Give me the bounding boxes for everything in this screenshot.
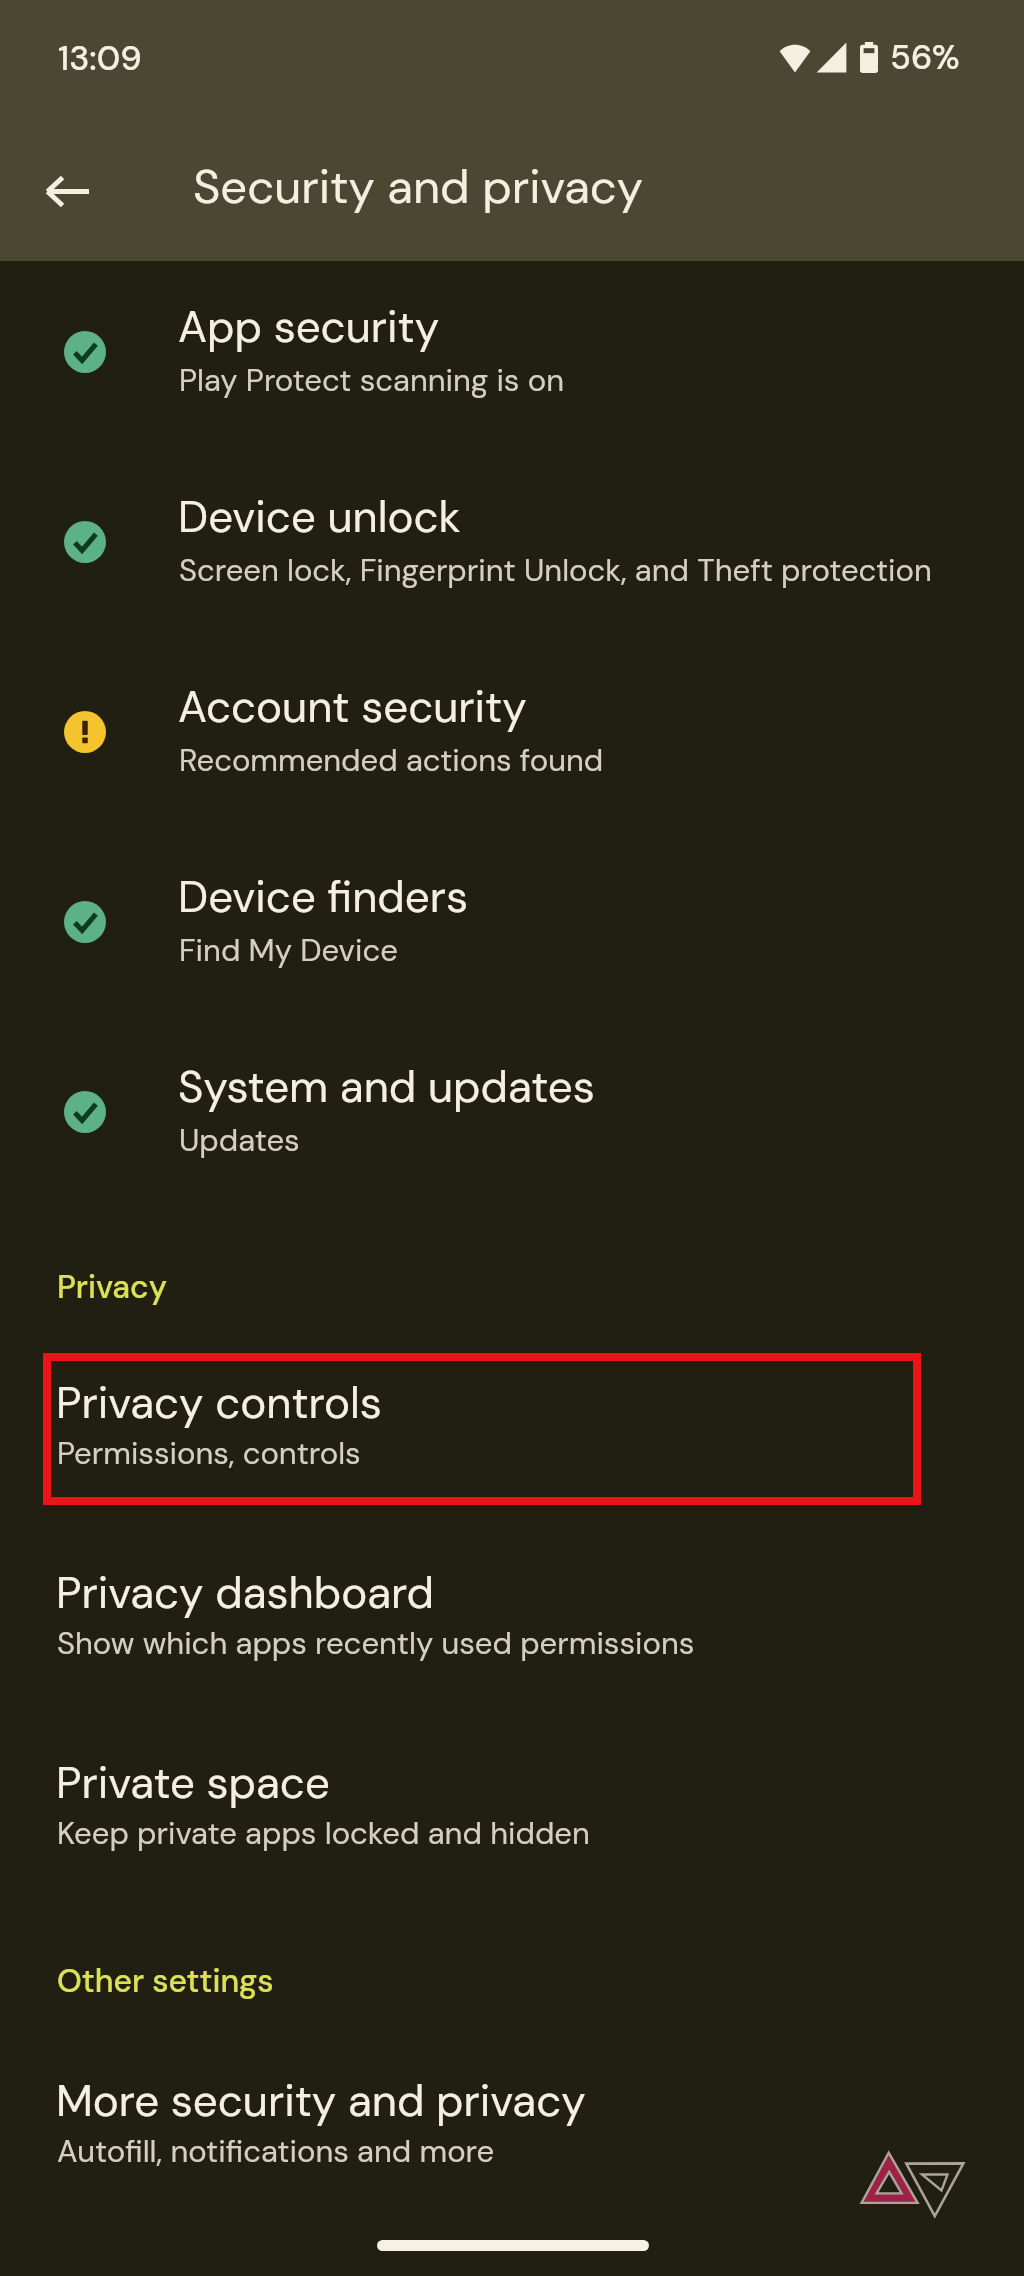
button[interactable]: Device unlock: [0, 439, 1024, 629]
staticText: Account security: [178, 679, 527, 736]
staticText: Updates: [179, 1120, 300, 1160]
staticText: Private space: [56, 1755, 330, 1812]
staticText: More security and privacy: [56, 2073, 586, 2130]
button[interactable]: System and updates: [0, 1009, 1024, 1199]
staticText: Screen lock, Fingerprint Unlock, and The…: [179, 550, 932, 590]
staticText: Find My Device: [179, 930, 398, 970]
button[interactable]: Private space: [0, 1705, 1024, 1895]
staticText: System and updates: [178, 1059, 595, 1116]
staticText: Device finders: [178, 869, 468, 926]
button[interactable]: Privacy controls: [0, 1325, 1024, 1515]
staticText: App security: [178, 299, 440, 356]
staticText: Autofill, notifications and more: [57, 2131, 495, 2171]
staticText: Keep private apps locked and hidden: [57, 1813, 590, 1853]
button[interactable]: Privacy dashboard: [0, 1515, 1024, 1705]
staticText: Show which apps recently used permission…: [57, 1623, 695, 1663]
staticText: Privacy dashboard: [56, 1565, 434, 1622]
staticText: Security and privacy: [193, 156, 644, 217]
button[interactable]: Device finders: [0, 819, 1024, 1009]
staticText: Privacy: [57, 1266, 167, 1308]
staticText: Privacy controls: [56, 1375, 382, 1432]
staticText: Recommended actions found: [179, 740, 604, 780]
button[interactable]: Account security: [0, 629, 1024, 819]
staticText: Permissions, controls: [57, 1433, 361, 1473]
button[interactable]: More security and privacy: [0, 2023, 1024, 2213]
staticText: 56%: [890, 35, 960, 79]
button[interactable]: App security: [0, 261, 1024, 439]
staticText: Play Protect scanning is on: [179, 360, 564, 400]
staticText: Other settings: [57, 1960, 274, 2002]
staticText: 13:09: [58, 36, 142, 80]
staticText: Device unlock: [178, 489, 461, 546]
button[interactable]: Back: [29, 153, 105, 229]
